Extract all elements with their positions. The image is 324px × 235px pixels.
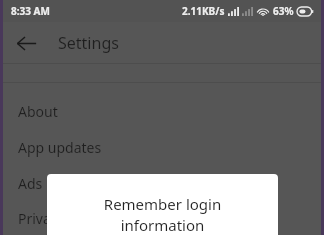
staticText: Settings: [58, 32, 119, 54]
staticText: Ads: [18, 174, 43, 193]
staticText: 8:33 AM: [11, 4, 50, 18]
button[interactable]: App updates: [3, 129, 321, 165]
staticText: 2.11KB/s: [182, 4, 225, 18]
staticText: App updates: [18, 138, 102, 157]
staticText: Remember login information: [47, 194, 278, 235]
button[interactable]: Ads: [3, 165, 321, 201]
staticText: About: [18, 102, 58, 121]
staticText: 63%: [273, 4, 294, 18]
button[interactable]: Back: [7, 24, 45, 62]
button[interactable]: About: [3, 93, 321, 129]
staticText: Privacy: [18, 209, 65, 228]
button[interactable]: Privacy: [3, 201, 321, 235]
button[interactable]: Remember login information: [47, 174, 278, 235]
